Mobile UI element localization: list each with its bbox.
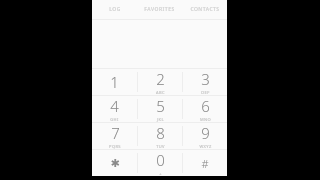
staticText: 1 — [110, 72, 119, 92]
staticText: GHI — [110, 117, 119, 122]
button[interactable]: ✱ — [92, 150, 137, 176]
staticText: TUV — [156, 144, 165, 149]
button[interactable]: 6 — [183, 96, 227, 122]
staticText: MNO — [200, 117, 211, 122]
staticText: 5 — [156, 96, 165, 116]
staticText: 2 — [156, 69, 165, 89]
staticText: + — [159, 171, 162, 176]
staticText: 6 — [201, 96, 210, 116]
button[interactable]: CONTACTS — [182, 0, 227, 19]
button[interactable]: # — [183, 150, 227, 176]
button[interactable]: LOG — [92, 0, 137, 19]
staticText: JKL — [157, 117, 164, 122]
staticText: 8 — [156, 123, 165, 143]
button[interactable]: 1 — [92, 69, 137, 95]
staticText: 7 — [111, 123, 120, 143]
staticText: 9 — [201, 123, 210, 143]
staticText: PQRS — [109, 144, 121, 149]
staticText: 0 — [156, 150, 165, 170]
staticText: # — [201, 156, 209, 171]
staticText: WXYZ — [199, 144, 212, 149]
staticText: 4 — [110, 96, 119, 116]
button[interactable]: 2 — [138, 69, 182, 95]
button[interactable]: 9 — [183, 123, 227, 149]
staticText: ✱ — [110, 157, 120, 170]
staticText: CONTACTS — [190, 6, 220, 13]
button[interactable]: 4 — [92, 96, 137, 122]
button[interactable]: 8 — [138, 123, 182, 149]
staticText: ABC — [156, 90, 165, 95]
button[interactable]: 3 — [183, 69, 227, 95]
button[interactable]: FAVORITES — [137, 0, 182, 19]
staticText: FAVORITES — [144, 6, 175, 13]
button[interactable]: 5 — [138, 96, 182, 122]
staticText: DEF — [201, 90, 210, 95]
staticText: 3 — [201, 69, 210, 89]
button[interactable]: 0 — [138, 150, 182, 176]
button[interactable]: 7 — [92, 123, 137, 149]
staticText: LOG — [109, 6, 121, 13]
